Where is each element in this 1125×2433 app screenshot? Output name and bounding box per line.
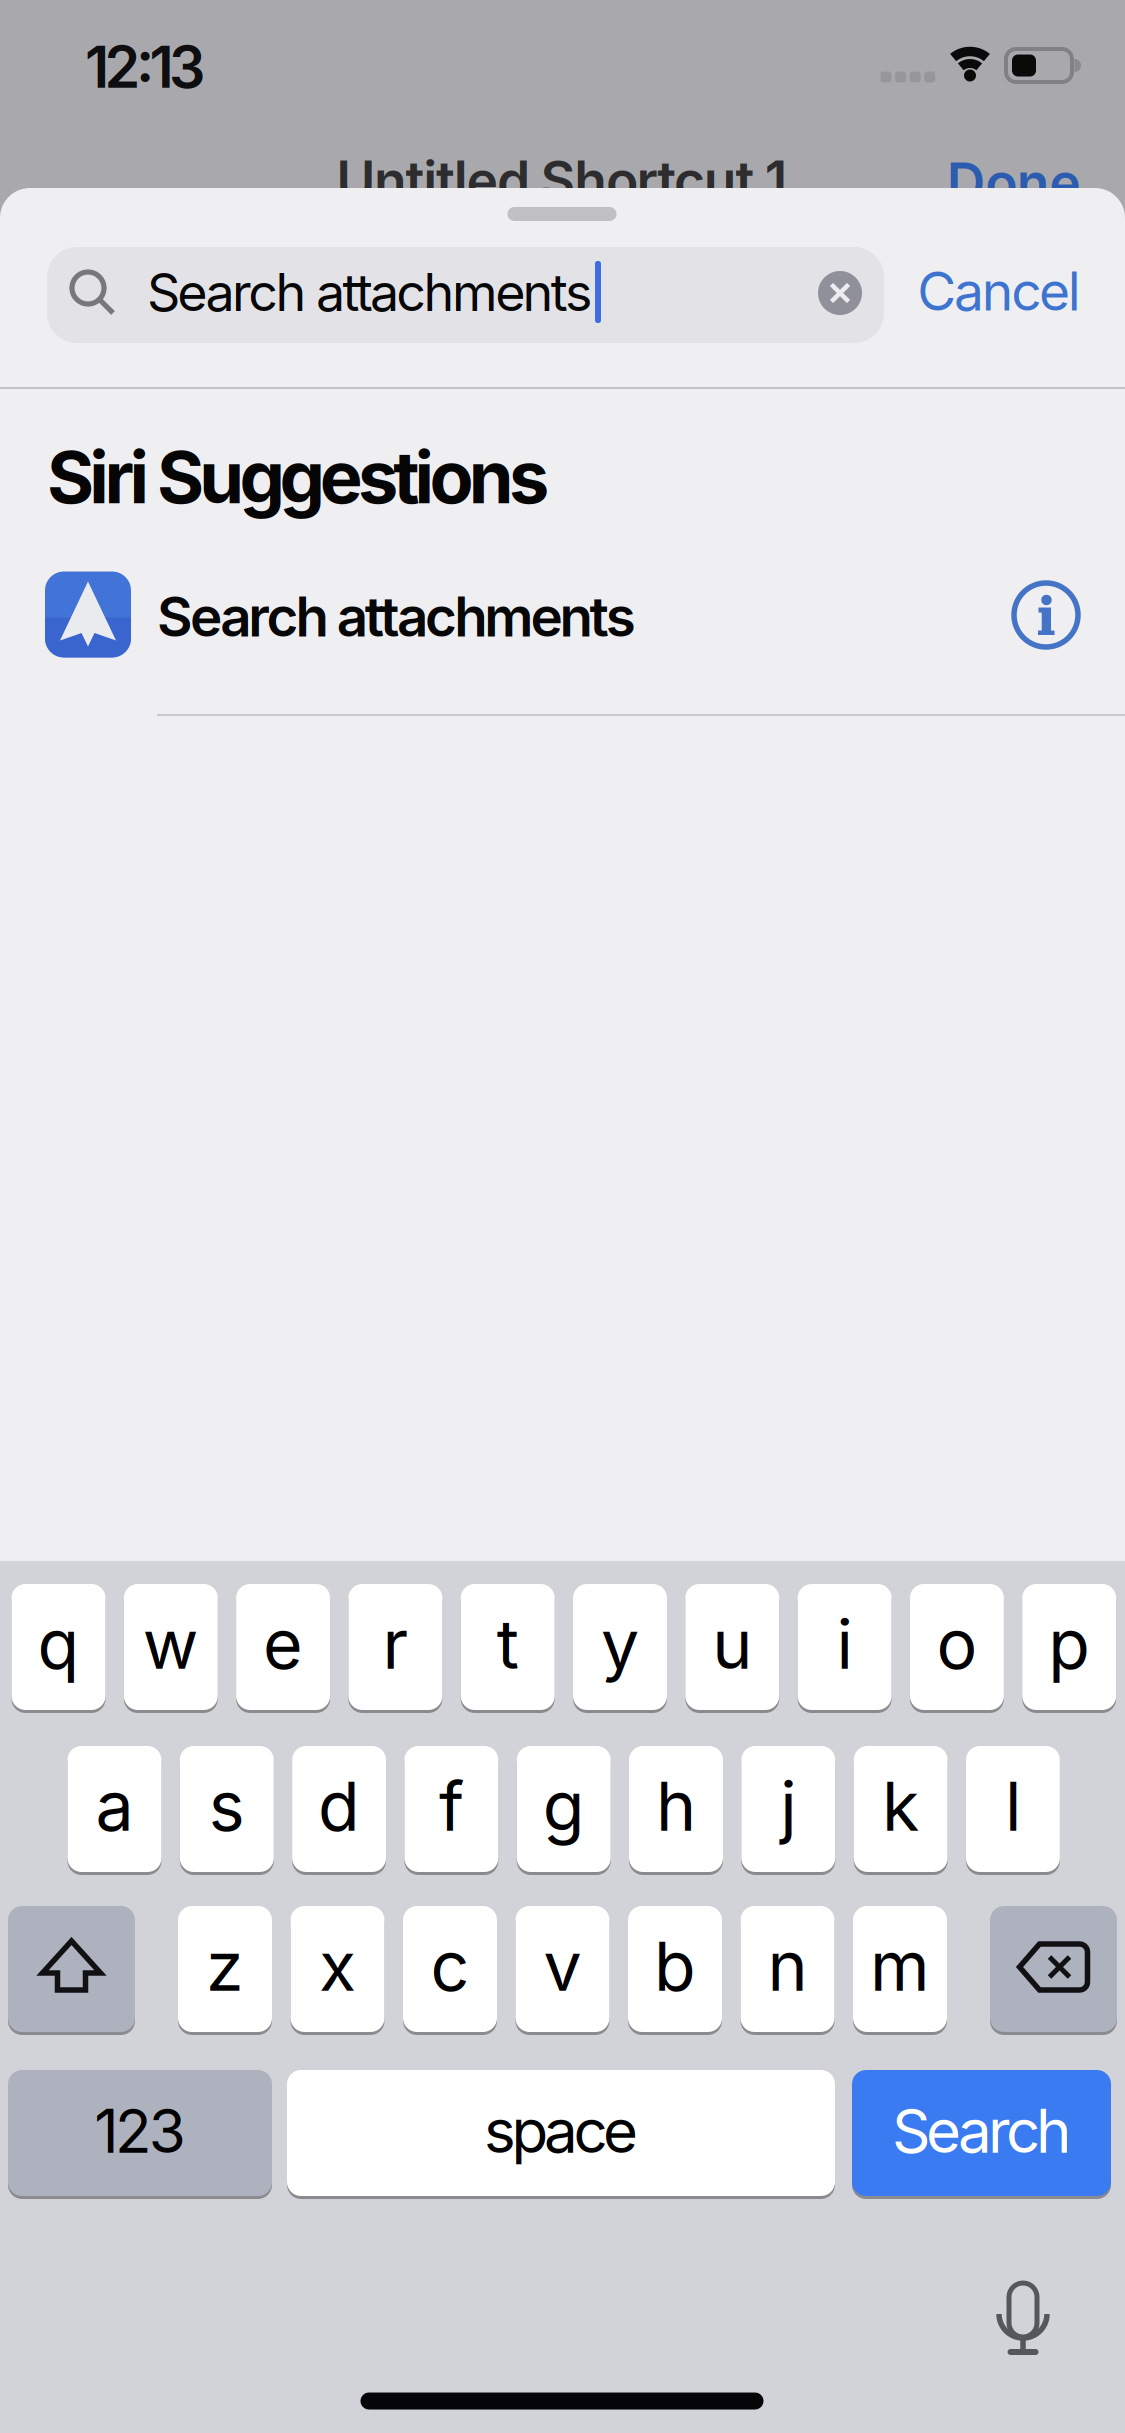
staticText: h — [656, 1766, 696, 1846]
staticText: m — [870, 1926, 930, 2006]
staticText: j — [780, 1766, 796, 1846]
staticText: d — [318, 1766, 360, 1846]
staticText: p — [1048, 1604, 1090, 1684]
button[interactable]: d — [292, 1744, 386, 1873]
staticText: Untitled Shortcut 1 — [336, 148, 788, 211]
button[interactable]: u — [685, 1582, 779, 1711]
button[interactable]: space — [287, 2068, 835, 2197]
button[interactable]: h — [629, 1744, 723, 1873]
staticText: y — [601, 1604, 639, 1684]
button[interactable]: m — [853, 1904, 947, 2033]
button[interactable]: y — [573, 1582, 667, 1711]
staticText: Search attachments — [147, 261, 592, 323]
button[interactable]: Delete — [990, 1904, 1117, 2033]
staticText: a — [95, 1766, 133, 1846]
staticText: v — [543, 1926, 581, 2006]
button[interactable]: b — [628, 1904, 722, 2033]
button[interactable]: Info — [1012, 581, 1080, 649]
button[interactable]: n — [740, 1904, 834, 2033]
staticText: b — [654, 1926, 696, 2006]
button[interactable]: Shift — [8, 1904, 135, 2033]
staticText: space — [484, 2096, 638, 2166]
button[interactable]: g — [517, 1744, 611, 1873]
staticText: l — [1005, 1766, 1021, 1846]
staticText: c — [430, 1926, 469, 2006]
button[interactable]: s — [180, 1744, 274, 1873]
button[interactable]: a — [67, 1744, 161, 1873]
button[interactable]: Cancel — [917, 259, 1081, 322]
staticText: 123 — [94, 2096, 186, 2166]
staticText: q — [37, 1604, 79, 1684]
button[interactable]: Clear text — [818, 271, 862, 315]
button[interactable]: l — [966, 1744, 1060, 1873]
button[interactable]: Dictation — [999, 2280, 1049, 2356]
staticText: k — [882, 1766, 919, 1846]
button[interactable]: Search — [852, 2068, 1111, 2197]
staticText: g — [543, 1766, 585, 1846]
staticText: u — [712, 1604, 752, 1684]
staticText: Siri Suggestions — [47, 434, 549, 519]
button[interactable]: z — [178, 1904, 272, 2033]
button[interactable]: q — [11, 1582, 105, 1711]
staticText: o — [936, 1604, 977, 1684]
staticText: Search attachments — [157, 584, 636, 649]
staticText: n — [767, 1926, 807, 2006]
staticText: t — [497, 1604, 519, 1684]
staticText: r — [382, 1604, 408, 1684]
staticText: z — [206, 1926, 244, 2006]
staticText: Done — [947, 150, 1081, 213]
button[interactable]: j — [741, 1744, 835, 1873]
staticText: Cancel — [917, 259, 1081, 322]
button[interactable]: w — [124, 1582, 218, 1711]
button[interactable]: Search attachments — [0, 542, 1125, 687]
staticText: w — [143, 1604, 199, 1684]
staticText: s — [209, 1766, 245, 1846]
button[interactable]: p — [1022, 1582, 1116, 1711]
staticText: i — [837, 1604, 853, 1684]
staticText: e — [263, 1604, 303, 1684]
button[interactable]: v — [515, 1904, 609, 2033]
button[interactable]: o — [910, 1582, 1004, 1711]
button[interactable]: c — [403, 1904, 497, 2033]
button[interactable]: i — [798, 1582, 892, 1711]
button[interactable]: 123 — [8, 2068, 272, 2197]
button[interactable]: x — [290, 1904, 384, 2033]
button[interactable]: t — [461, 1582, 555, 1711]
staticText: f — [439, 1766, 464, 1846]
staticText: x — [319, 1926, 356, 2006]
button[interactable]: k — [854, 1744, 948, 1873]
staticText: 12:13 — [85, 33, 205, 101]
button[interactable]: e — [236, 1582, 330, 1711]
button[interactable]: Search attachments — [47, 247, 884, 343]
staticText: Search — [892, 2096, 1071, 2166]
button[interactable]: f — [404, 1744, 498, 1873]
button[interactable]: r — [348, 1582, 442, 1711]
